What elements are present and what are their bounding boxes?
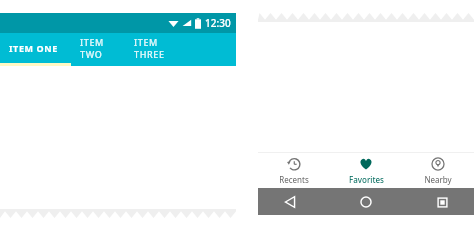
staticText: ITEM THREE <box>134 36 166 60</box>
staticText: Recents <box>279 174 309 185</box>
button[interactable]: Recents <box>258 153 330 188</box>
button[interactable]: ITEM TWO <box>71 33 125 63</box>
staticText: ITEM ONE <box>9 42 58 54</box>
button[interactable]: ITEM THREE <box>125 33 166 63</box>
staticText: ITEM TWO <box>80 36 125 60</box>
button[interactable]: Nearby <box>402 153 474 188</box>
button[interactable]: Overview <box>432 192 452 212</box>
staticText: 12:30 <box>205 16 231 30</box>
staticText: Favorites <box>349 174 384 185</box>
button[interactable]: Back <box>280 192 300 212</box>
button[interactable]: Favorites <box>330 153 402 188</box>
button[interactable]: ITEM ONE <box>0 33 71 63</box>
staticText: Nearby <box>424 174 452 185</box>
button[interactable]: Home <box>356 192 376 212</box>
